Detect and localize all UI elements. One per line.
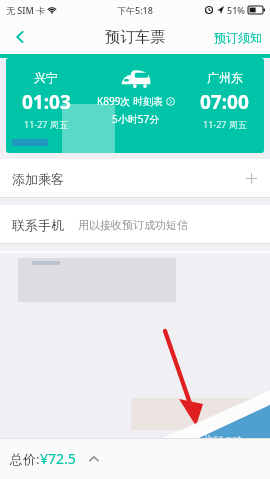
button[interactable]: 预订须知: [206, 24, 270, 51]
staticText: 预订须知: [214, 30, 262, 45]
button[interactable]: K899次 时刻表: [97, 94, 175, 108]
staticText: 无 SIM 卡: [6, 4, 46, 16]
staticText: 5小时57分: [112, 112, 160, 126]
staticText: 01:03: [22, 89, 71, 115]
staticText: 预订车票: [105, 28, 165, 47]
staticText: 用以接收预订成功短信: [78, 218, 188, 232]
staticText: 兴宁: [34, 70, 58, 85]
button[interactable]: 联系手机: [0, 205, 270, 244]
staticText: 下午5:18: [117, 4, 153, 16]
staticText: 添加乘客: [12, 171, 64, 187]
staticText: K899次 时刻表: [97, 94, 163, 108]
staticText: 联系手机: [12, 217, 64, 233]
button[interactable]: 添加乘客: [0, 159, 270, 198]
staticText: 总价:: [10, 450, 40, 468]
staticText: ¥72.5: [40, 449, 76, 468]
staticText: 11-27 周五: [24, 118, 68, 130]
staticText: 51%: [227, 4, 245, 16]
staticText: ib51 net: [205, 432, 242, 444]
button[interactable]: 总价:: [10, 449, 100, 468]
staticText: 07:00: [200, 89, 249, 115]
staticText: 广州东: [207, 70, 243, 85]
button[interactable]: Back: [0, 20, 40, 54]
staticText: 11-27 周五: [203, 118, 247, 130]
